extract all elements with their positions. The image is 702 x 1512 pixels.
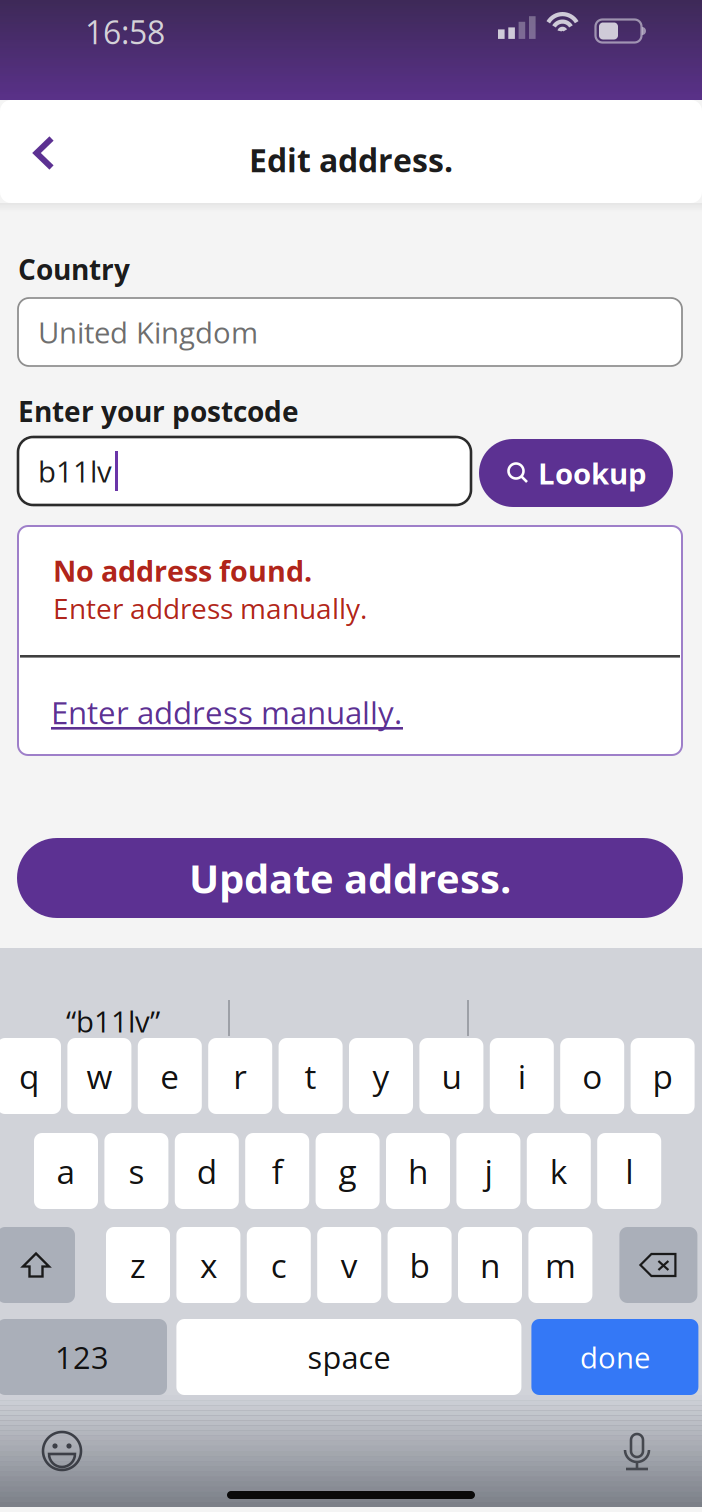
button[interactable]: o: [560, 1038, 624, 1114]
button[interactable]: s: [104, 1133, 168, 1209]
button[interactable]: 123: [0, 1319, 167, 1395]
staticText: b11lv: [38, 451, 112, 491]
button[interactable]: Lookup: [479, 439, 673, 507]
button[interactable]: r: [208, 1038, 272, 1114]
staticText: r: [233, 1053, 247, 1099]
staticText: 16:58: [85, 10, 165, 54]
button[interactable]: Shift: [0, 1227, 75, 1303]
staticText: “b11lv”: [66, 1001, 160, 1041]
button[interactable]: d: [175, 1133, 239, 1209]
button[interactable]: k: [527, 1133, 591, 1209]
staticText: Edit address.: [249, 138, 453, 182]
button[interactable]: n: [458, 1227, 522, 1303]
staticText: k: [550, 1148, 568, 1194]
staticText: h: [408, 1148, 428, 1194]
staticText: g: [339, 1148, 357, 1194]
staticText: l: [625, 1148, 633, 1194]
button[interactable]: u: [419, 1038, 483, 1114]
staticText: Enter address manually.: [53, 589, 367, 627]
staticText: q: [19, 1053, 39, 1099]
button[interactable]: g: [316, 1133, 380, 1209]
button[interactable]: t: [279, 1038, 343, 1114]
staticText: y: [372, 1053, 389, 1099]
staticText: e: [160, 1053, 179, 1099]
button[interactable]: Back: [4, 109, 84, 197]
staticText: c: [271, 1242, 287, 1288]
staticText: Lookup: [538, 453, 647, 493]
staticText: United Kingdom: [38, 312, 258, 352]
staticText: f: [272, 1148, 283, 1194]
button[interactable]: e: [138, 1038, 202, 1114]
button[interactable]: z: [106, 1227, 170, 1303]
button[interactable]: done: [531, 1319, 698, 1395]
staticText: o: [582, 1053, 602, 1099]
button[interactable]: c: [247, 1227, 311, 1303]
staticText: s: [128, 1148, 144, 1194]
button[interactable]: h: [386, 1133, 450, 1209]
staticText: b: [410, 1242, 430, 1288]
button[interactable]: a: [34, 1133, 98, 1209]
staticText: Enter your postcode: [18, 392, 299, 430]
staticText: w: [86, 1053, 112, 1099]
staticText: m: [545, 1242, 576, 1288]
staticText: space: [307, 1336, 390, 1378]
button[interactable]: Update address.: [17, 838, 683, 918]
button[interactable]: j: [456, 1133, 520, 1209]
staticText: d: [197, 1148, 217, 1194]
button[interactable]: y: [349, 1038, 413, 1114]
button[interactable]: Delete: [619, 1227, 697, 1303]
button[interactable]: Dictation: [612, 1420, 662, 1482]
button[interactable]: v: [317, 1227, 381, 1303]
staticText: i: [518, 1053, 526, 1099]
staticText: Update address.: [189, 851, 511, 905]
button[interactable]: w: [67, 1038, 131, 1114]
staticText: Enter address manually.: [51, 691, 402, 733]
button[interactable]: b: [388, 1227, 452, 1303]
staticText: u: [441, 1053, 461, 1099]
button[interactable]: q: [0, 1038, 61, 1114]
button[interactable]: United Kingdom: [18, 298, 682, 366]
staticText: done: [580, 1337, 650, 1377]
staticText: 123: [55, 1336, 109, 1378]
button[interactable]: Enter address manually.: [20, 658, 680, 755]
staticText: v: [341, 1242, 358, 1288]
button[interactable]: m: [528, 1227, 592, 1303]
staticText: t: [305, 1053, 317, 1099]
button[interactable]: space: [176, 1319, 521, 1395]
button[interactable]: Emoji: [31, 1420, 93, 1482]
button[interactable]: x: [176, 1227, 240, 1303]
button[interactable]: p: [631, 1038, 695, 1114]
button[interactable]: l: [597, 1133, 661, 1209]
staticText: x: [200, 1242, 217, 1288]
button[interactable]: f: [245, 1133, 309, 1209]
staticText: j: [484, 1148, 492, 1194]
staticText: n: [480, 1242, 500, 1288]
staticText: a: [56, 1148, 75, 1194]
staticText: p: [653, 1053, 673, 1099]
staticText: z: [130, 1242, 146, 1288]
button[interactable]: b11lv: [18, 437, 471, 505]
button[interactable]: i: [490, 1038, 554, 1114]
staticText: No address found.: [53, 551, 312, 590]
staticText: Country: [18, 250, 130, 288]
